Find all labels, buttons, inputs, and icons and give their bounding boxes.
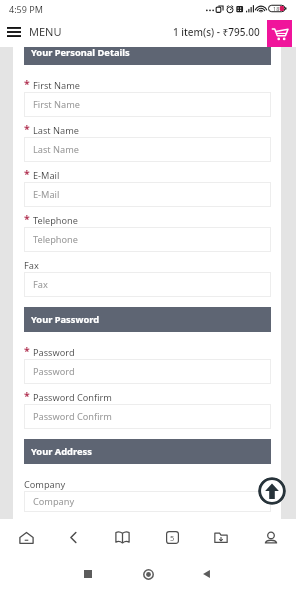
staticText: Last Name	[33, 143, 79, 156]
staticText: *	[24, 77, 30, 91]
button[interactable]: Downloads	[202, 519, 240, 556]
staticText: Telephone	[33, 233, 78, 246]
staticText: Your Password	[31, 313, 100, 326]
staticText: First Name	[33, 79, 80, 92]
staticText: Company	[33, 495, 75, 508]
staticText: Your Personal Details	[31, 47, 130, 59]
button[interactable]: Home	[126, 556, 170, 592]
staticText: Fax	[24, 259, 39, 272]
staticText: E-Mail	[33, 188, 60, 201]
staticText: Password	[33, 346, 75, 359]
staticText: 5	[170, 533, 175, 543]
staticText: 4:59 PM	[9, 3, 43, 15]
staticText: Fax	[33, 278, 48, 291]
button[interactable]: Bookmarks	[103, 519, 141, 556]
button[interactable]: Recent apps	[66, 556, 110, 592]
staticText: *	[24, 122, 30, 136]
staticText: *	[24, 167, 30, 181]
staticText: Password Confirm	[33, 410, 112, 423]
staticText: *	[24, 212, 30, 226]
button[interactable]: Tabs	[153, 519, 191, 556]
staticText: First Name	[33, 98, 80, 111]
staticText: E-Mail	[33, 169, 60, 182]
staticText: Last Name	[33, 124, 79, 137]
button[interactable]: Back	[54, 519, 92, 556]
staticText: 18	[273, 5, 280, 12]
staticText: Your Address	[31, 445, 92, 458]
staticText: MENU	[29, 24, 62, 39]
staticText: 1 item(s) - ₹795.00	[173, 25, 260, 39]
button[interactable]: MENU	[0, 19, 70, 44]
staticText: Telephone	[33, 214, 78, 227]
button[interactable]: Profile	[252, 519, 290, 556]
staticText: Password Confirm	[33, 391, 112, 404]
button[interactable]: Home	[7, 519, 45, 556]
staticText: Company	[24, 478, 66, 491]
staticText: *	[24, 389, 30, 403]
button[interactable]: Scroll to top	[258, 477, 286, 505]
staticText: Password	[33, 365, 75, 378]
button[interactable]: Back	[184, 556, 228, 592]
staticText: *	[24, 344, 30, 358]
button[interactable]: Shopping cart	[267, 20, 292, 47]
